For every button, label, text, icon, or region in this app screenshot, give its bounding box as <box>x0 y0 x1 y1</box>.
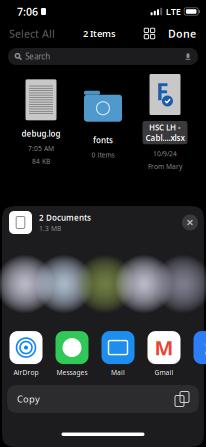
button[interactable]: Copy <box>7 385 199 413</box>
staticText: Search <box>25 51 50 62</box>
staticText: fonts <box>93 135 113 145</box>
button[interactable]: Done <box>161 23 203 44</box>
staticText: 2 Documents <box>39 212 91 223</box>
staticText: Messages <box>56 368 87 377</box>
button[interactable]: Messages <box>86 331 119 377</box>
staticText: M <box>154 334 173 361</box>
staticText: Done <box>168 26 196 41</box>
staticText: 10/9/24 <box>153 149 177 158</box>
staticText: HSC LH - <box>149 122 181 133</box>
staticText: From Mary <box>148 162 182 171</box>
button[interactable]: debug.log <box>10 79 72 166</box>
button[interactable]: F <box>134 74 196 171</box>
button[interactable]: fonts <box>72 86 134 159</box>
staticText: 0 items <box>91 150 114 159</box>
staticText: 1.3 MB <box>39 224 61 233</box>
button[interactable]: M <box>86 331 119 377</box>
staticText: AirDrop <box>13 368 38 377</box>
button[interactable]: Search <box>0 48 206 65</box>
staticText: Cabl....xlsx <box>145 133 184 143</box>
button[interactable]: AirDrop <box>86 331 119 377</box>
staticText: 7:05 AM <box>28 144 54 153</box>
staticText: debug.log <box>21 128 60 139</box>
button[interactable]: Mail <box>86 331 119 377</box>
button[interactable]: S <box>86 331 119 377</box>
button[interactable]: Select All <box>3 23 61 44</box>
staticText: F <box>156 76 168 106</box>
staticText: S <box>204 334 206 361</box>
staticText: 2 Items <box>83 27 116 40</box>
staticText: 7:06 <box>17 4 38 19</box>
staticText: Mail <box>111 368 125 377</box>
staticText: LTE <box>166 5 181 18</box>
staticText: Copy <box>17 393 40 405</box>
staticText: Gmail <box>154 368 173 377</box>
staticText: Select All <box>9 26 55 41</box>
button[interactable]: Close <box>182 214 198 230</box>
button[interactable]: Icon view <box>138 23 161 44</box>
staticText: 84 KB <box>32 157 50 166</box>
